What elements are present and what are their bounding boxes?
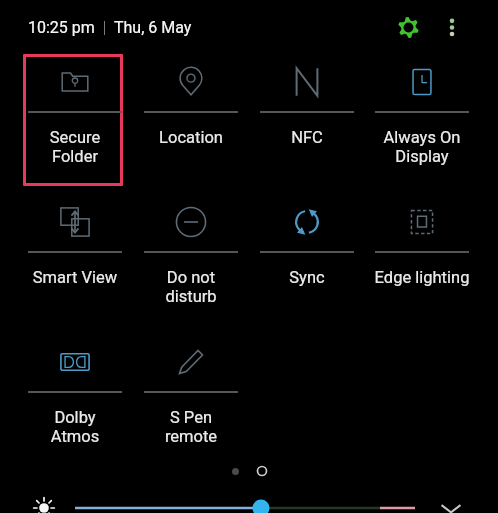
staticText: 10:25 pm (28, 18, 95, 37)
button[interactable]: Secure Folder (17, 55, 133, 195)
staticText: Smart View (17, 268, 133, 287)
staticText: S Pen remote (133, 408, 249, 446)
button[interactable]: Smart View (17, 195, 133, 335)
button[interactable]: Always On Display (364, 55, 480, 195)
staticText: Always On Display (364, 128, 480, 166)
button[interactable]: Expand (437, 494, 465, 513)
button[interactable]: Location (133, 55, 249, 195)
button[interactable]: Edge lighting (364, 195, 480, 335)
button[interactable]: NFC (249, 55, 365, 195)
staticText: Dolby Atmos (17, 408, 133, 446)
button[interactable]: Do not disturb (133, 195, 249, 335)
button[interactable]: Sync (249, 195, 365, 335)
staticText: Thu, 6 May (114, 18, 192, 37)
button[interactable]: Brightness slider (69, 495, 421, 513)
button[interactable]: More options (430, 6, 474, 50)
staticText: Edge lighting (364, 268, 480, 287)
button[interactable]: Settings (386, 6, 430, 50)
button[interactable]: Brightness (31, 495, 57, 513)
staticText: NFC (249, 128, 365, 147)
staticText: Sync (249, 268, 365, 287)
staticText: Location (133, 128, 249, 147)
staticText: Secure Folder (17, 128, 133, 166)
staticText: Do not disturb (133, 268, 249, 306)
button[interactable]: S Pen remote (133, 335, 249, 475)
button[interactable]: Dolby Atmos (17, 335, 133, 475)
